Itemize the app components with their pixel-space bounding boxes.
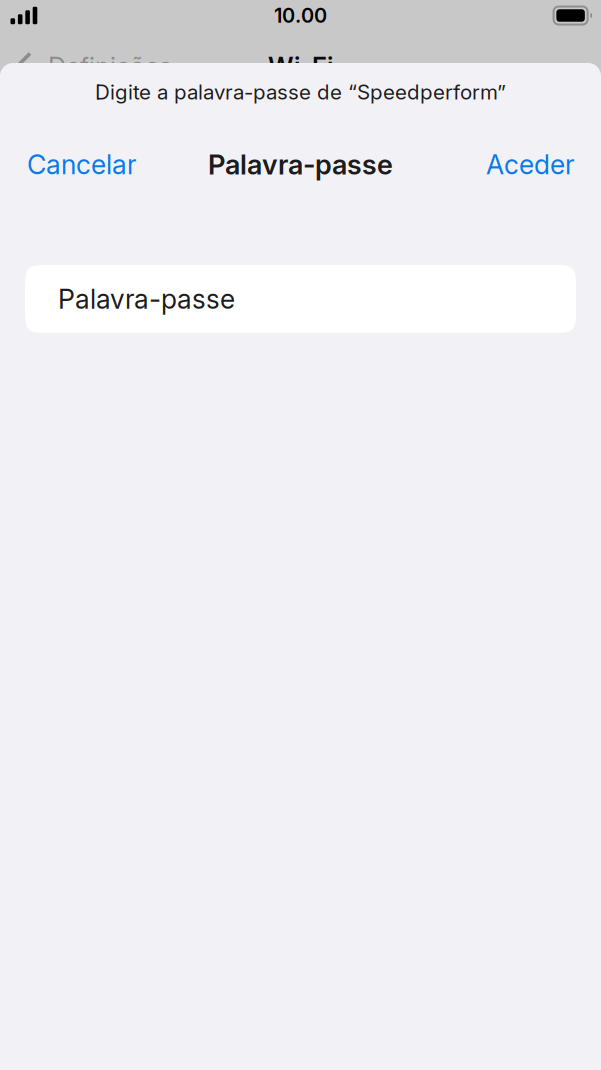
staticText: Digite a palavra-passe de “Speedperform” xyxy=(95,80,506,104)
staticText: Definições xyxy=(48,51,172,82)
button[interactable]: Back to Definições xyxy=(0,45,182,88)
button[interactable]: Aceder xyxy=(482,138,579,191)
button[interactable]: Palavra-passe xyxy=(25,265,576,333)
button[interactable]: Cancelar xyxy=(23,138,141,191)
staticText: Wi-Fi xyxy=(268,51,333,82)
staticText: Palavra-passe xyxy=(208,148,393,181)
staticText: Cancelar xyxy=(27,148,137,181)
staticText: 10.00 xyxy=(274,3,327,28)
staticText: Palavra-passe xyxy=(58,283,235,315)
staticText: Aceder xyxy=(486,148,575,181)
